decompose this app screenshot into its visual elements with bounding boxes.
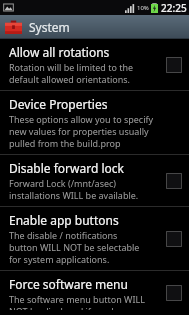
staticText: NOT be displayed if you have a xyxy=(9,305,139,310)
staticText: Rotation will be limited to the xyxy=(9,61,134,73)
staticText: The software menu button WILL xyxy=(9,293,145,305)
staticText: The disable / notifications xyxy=(9,229,118,241)
staticText: installations WILL be available. xyxy=(9,189,139,201)
staticText: for system applications. xyxy=(9,253,110,265)
button[interactable]: Toggle Allow all rotations xyxy=(166,57,182,73)
button[interactable]: Force software menu xyxy=(0,271,189,315)
other: System tools xyxy=(5,20,22,34)
button[interactable]: Toggle Disable forward lock xyxy=(166,173,182,189)
staticText: Force software menu xyxy=(9,276,128,292)
button[interactable]: Disable forward lock xyxy=(0,155,189,206)
button[interactable]: System tools xyxy=(0,15,189,39)
staticText: new values for properties usually xyxy=(9,125,149,137)
button[interactable]: Enable app buttons xyxy=(0,207,189,270)
button[interactable]: Toggle Enable app buttons xyxy=(166,231,182,247)
staticText: Disable forward lock xyxy=(9,160,124,176)
button[interactable]: Allow all rotations xyxy=(0,39,189,90)
staticText: Forward Lock (/mnt/asec) xyxy=(9,177,117,189)
button[interactable]: Device Properties xyxy=(0,91,189,154)
staticText: button WILL NOT be selectable xyxy=(9,241,140,253)
staticText: These options allow you to specify xyxy=(9,113,154,125)
staticText: Device Properties xyxy=(9,96,108,112)
staticText: pulled from the build.prop xyxy=(9,137,121,149)
staticText: System xyxy=(29,19,70,35)
button[interactable]: Toggle Force software menu xyxy=(166,285,182,301)
staticText: 22:25 xyxy=(161,1,187,15)
staticText: Allow all rotations xyxy=(9,44,110,60)
staticText: Enable app buttons xyxy=(9,212,119,228)
staticText: 10% xyxy=(137,4,149,12)
staticText: default allowed orientations. xyxy=(9,73,130,85)
